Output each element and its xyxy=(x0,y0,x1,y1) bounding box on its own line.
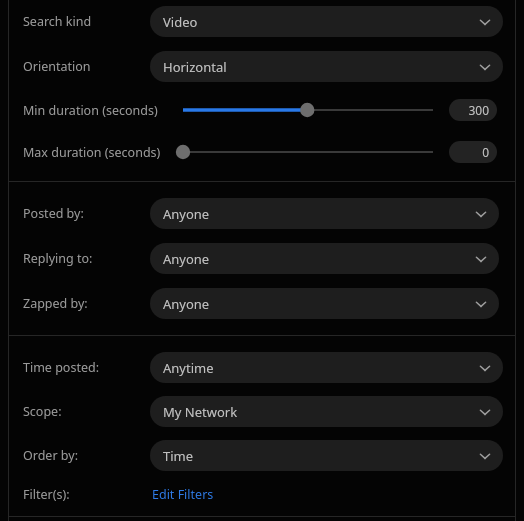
staticText: Order by: xyxy=(23,447,78,464)
staticText: Scope: xyxy=(23,403,62,420)
button[interactable]: Anytime xyxy=(150,352,503,383)
staticText: 0 xyxy=(482,144,489,160)
staticText: Time posted: xyxy=(23,359,100,376)
staticText: Search kind xyxy=(23,13,92,30)
staticText: Video xyxy=(163,13,477,31)
staticText: Min duration (seconds) xyxy=(23,102,158,119)
staticText: Anyone xyxy=(163,295,473,313)
button[interactable]: Anyone xyxy=(150,243,499,274)
button[interactable]: Edit Filters xyxy=(150,484,216,505)
staticText: 300 xyxy=(468,102,489,118)
staticText: Posted by: xyxy=(23,205,84,222)
button[interactable]: Horizontal xyxy=(150,51,503,82)
button[interactable]: Min duration (seconds) xyxy=(175,96,441,124)
staticText: Edit Filters xyxy=(152,486,214,503)
button[interactable]: Anyone xyxy=(150,288,499,319)
staticText: My Network xyxy=(163,403,477,421)
staticText: Filter(s): xyxy=(23,486,70,503)
button[interactable]: My Network xyxy=(150,396,503,427)
staticText: Anyone xyxy=(163,250,473,268)
staticText: Time xyxy=(163,447,477,465)
staticText: Replying to: xyxy=(23,250,93,267)
button[interactable]: Anyone xyxy=(150,198,499,229)
staticText: Orientation xyxy=(23,58,91,75)
staticText: Horizontal xyxy=(163,58,477,76)
staticText: Anyone xyxy=(163,205,473,223)
button[interactable]: 300 xyxy=(449,99,497,121)
staticText: Anytime xyxy=(163,359,477,377)
staticText: Max duration (seconds) xyxy=(23,144,161,161)
button[interactable]: Time xyxy=(150,440,503,471)
button[interactable]: Video xyxy=(150,6,503,37)
staticText: Zapped by: xyxy=(23,295,88,312)
button[interactable]: Max duration (seconds) xyxy=(175,138,441,166)
button[interactable]: 0 xyxy=(449,141,497,163)
